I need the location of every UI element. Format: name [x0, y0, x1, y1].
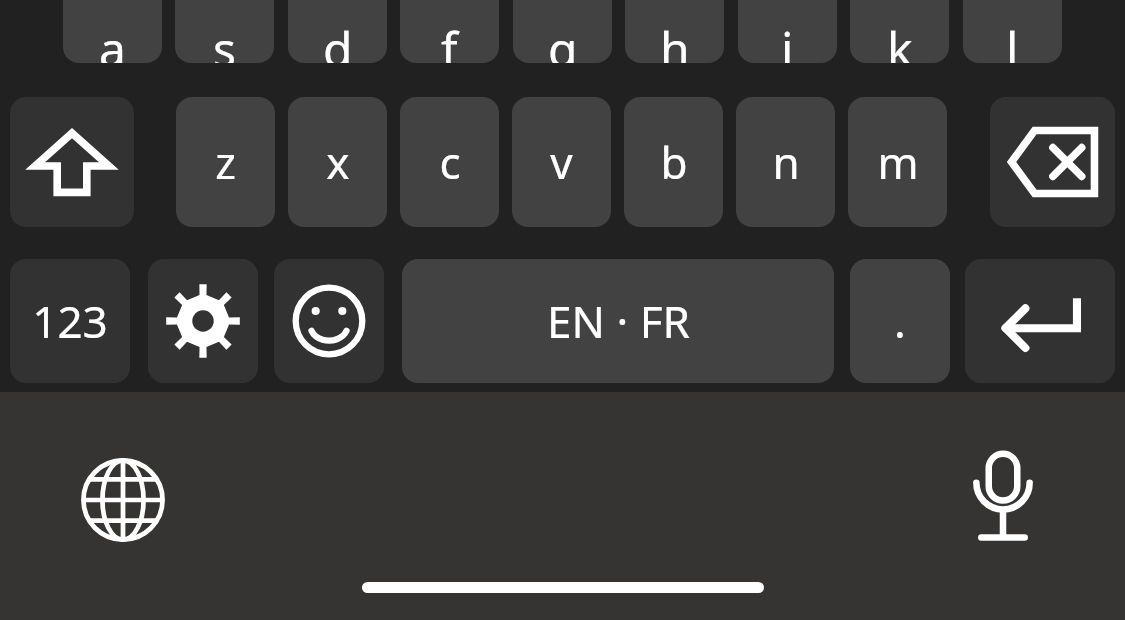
button[interactable]: l — [963, 0, 1062, 63]
staticText: g — [548, 16, 578, 63]
button[interactable]: z — [176, 97, 275, 227]
staticText: j — [781, 16, 794, 63]
staticText: l — [1006, 16, 1019, 63]
staticText: d — [323, 16, 353, 63]
staticText: v — [550, 132, 573, 192]
staticText: c — [439, 132, 461, 192]
button[interactable]: EN · FR — [402, 259, 834, 383]
button[interactable]: Emoji — [274, 259, 384, 383]
button[interactable]: 123 — [10, 259, 130, 383]
button[interactable]: Backspace — [990, 97, 1115, 227]
staticText: m — [877, 132, 919, 192]
button[interactable]: b — [624, 97, 723, 227]
button[interactable]: k — [850, 0, 949, 63]
button[interactable]: j — [738, 0, 837, 63]
staticText: b — [660, 132, 688, 192]
staticText: h — [660, 16, 690, 63]
button[interactable]: s — [175, 0, 274, 63]
button[interactable]: m — [848, 97, 947, 227]
staticText: a — [99, 16, 126, 63]
staticText: . — [894, 291, 906, 351]
staticText: s — [213, 16, 236, 63]
button[interactable]: v — [512, 97, 611, 227]
staticText: f — [441, 16, 458, 63]
button[interactable]: g — [513, 0, 612, 63]
button[interactable]: x — [288, 97, 387, 227]
button[interactable]: f — [400, 0, 499, 63]
staticText: x — [326, 132, 350, 192]
button[interactable]: Enter — [965, 259, 1115, 383]
staticText: EN · FR — [547, 291, 690, 351]
staticText: k — [887, 16, 913, 63]
button[interactable]: n — [736, 97, 835, 227]
button[interactable]: Shift — [10, 97, 134, 227]
button[interactable]: Voice input — [958, 452, 1048, 542]
button[interactable]: a — [63, 0, 162, 63]
button[interactable]: c — [400, 97, 499, 227]
button[interactable]: d — [288, 0, 387, 63]
button[interactable]: h — [625, 0, 724, 63]
button[interactable]: Settings — [148, 259, 258, 383]
button[interactable]: . — [850, 259, 950, 383]
button[interactable]: Change language — [78, 455, 168, 545]
staticText: 123 — [32, 291, 108, 351]
staticText: z — [215, 132, 236, 192]
staticText: n — [772, 132, 800, 192]
